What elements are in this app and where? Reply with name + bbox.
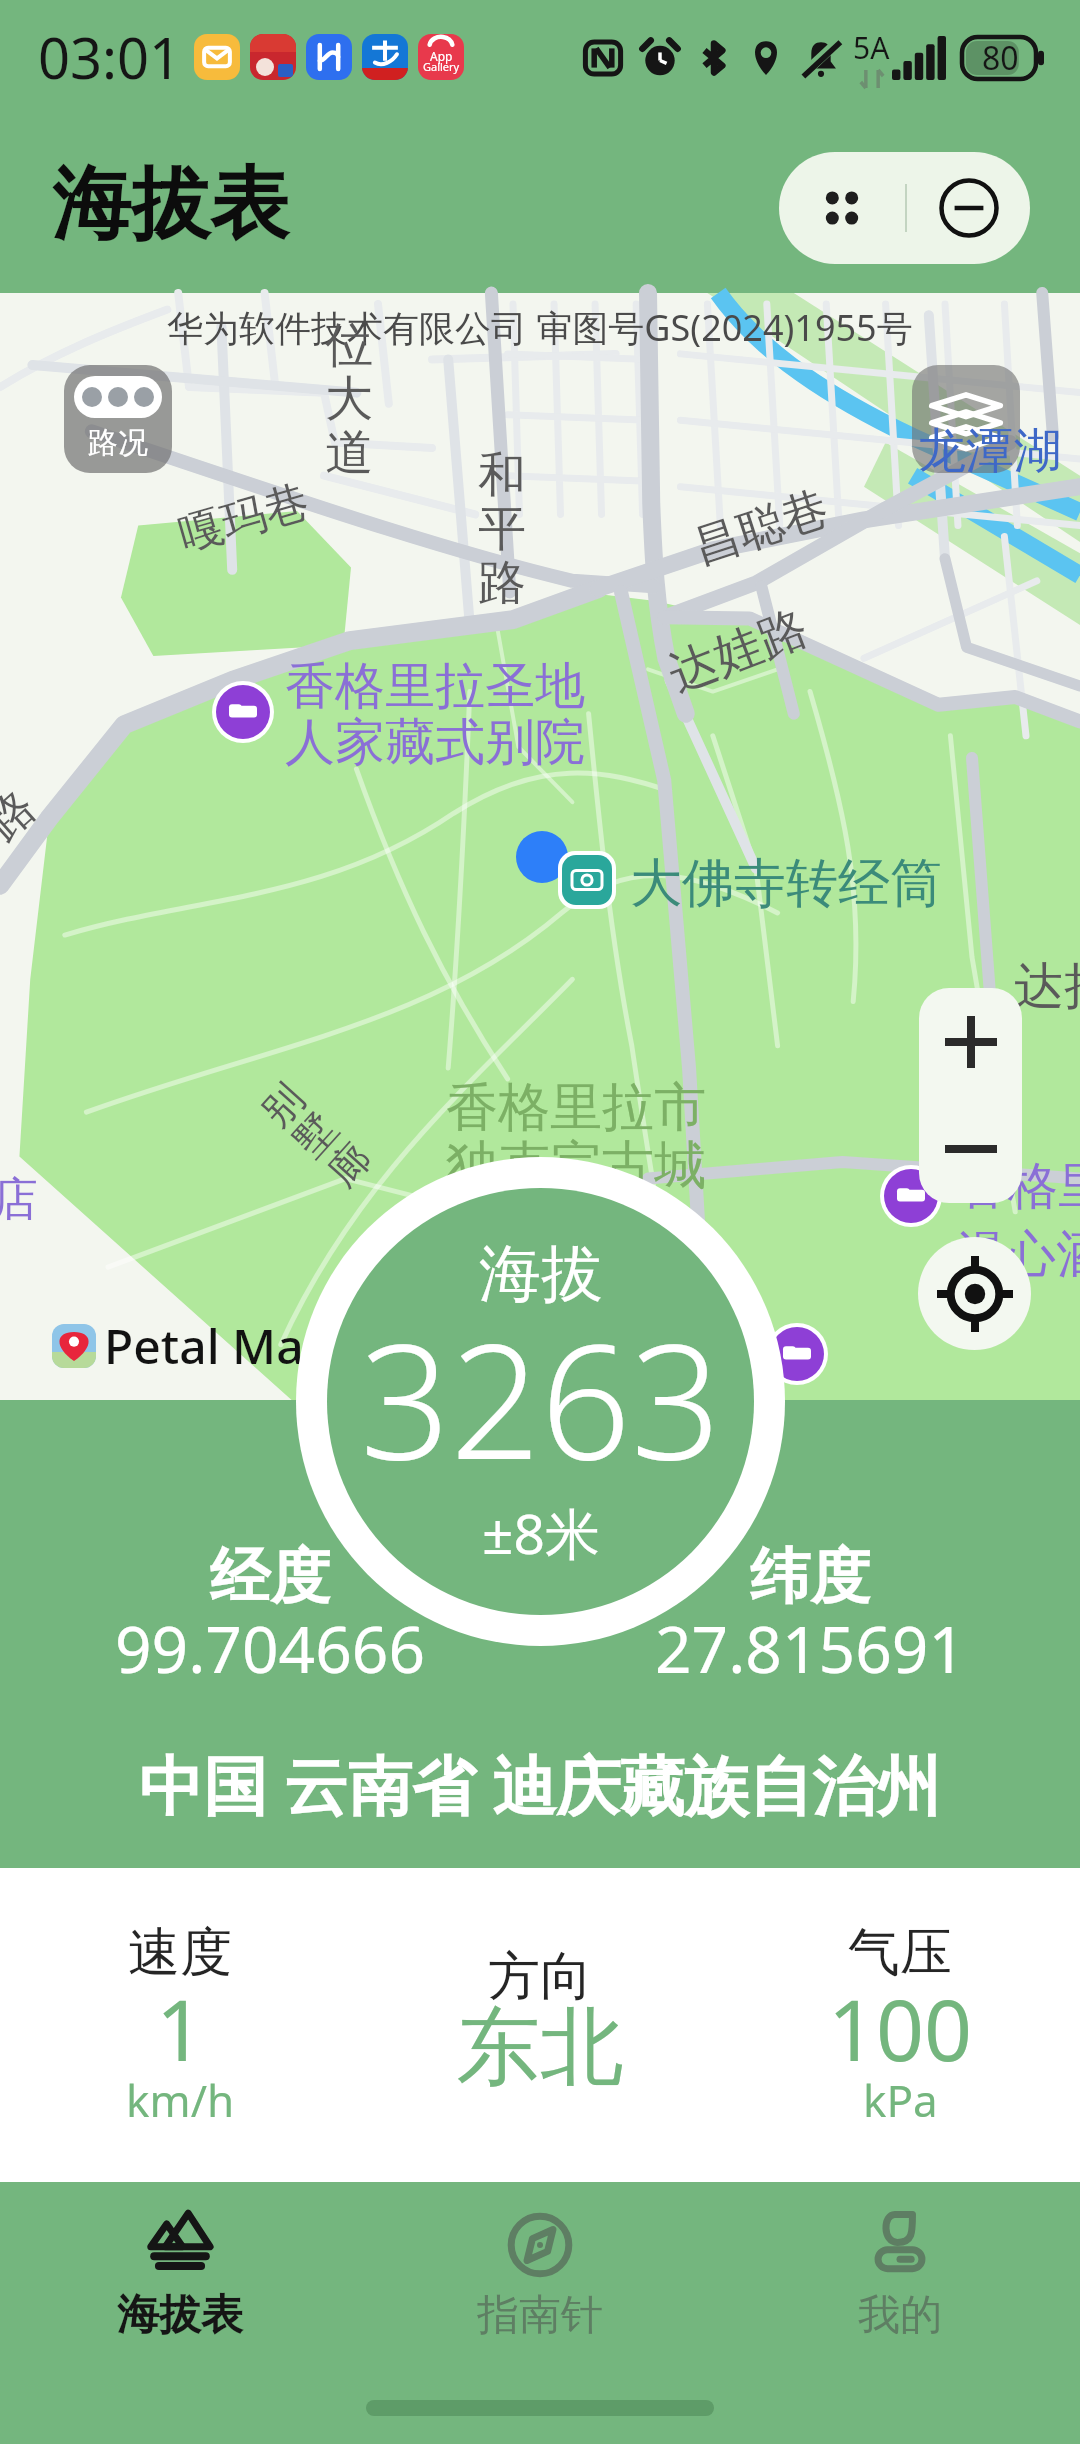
staticText: Gallery (423, 59, 460, 74)
button[interactable]: Zoom in (919, 988, 1022, 1095)
staticText: 昌聪巷 (686, 479, 836, 577)
staticText: 气压 (848, 1920, 952, 1986)
button[interactable]: My location (918, 1237, 1031, 1350)
staticText: Petal Maps (104, 1313, 357, 1378)
staticText: 别 墅 廊 (251, 1073, 381, 1197)
button[interactable]: 海拔表 (0, 2182, 360, 2368)
button[interactable]: 指南针 (360, 2182, 720, 2368)
staticText: ±8米 (482, 1495, 600, 1570)
staticText: 龙潭湖 (918, 421, 1062, 481)
staticText: 达娃路 (660, 597, 816, 705)
button[interactable]: Map layers (912, 365, 1020, 473)
staticText: 路 (0, 778, 47, 852)
staticText: 纬度 (750, 1539, 870, 1615)
staticText: 80 (982, 36, 1019, 80)
staticText: 3263 (360, 1290, 721, 1505)
staticText: 海拔表 (117, 2289, 243, 2342)
staticText: 位 大 道 (325, 315, 373, 483)
staticText: 海拔表 (52, 155, 289, 255)
button[interactable]: 路况 (64, 365, 172, 473)
staticText: 大佛寺转经筒 (630, 851, 942, 917)
button[interactable]: 方向 (360, 1868, 720, 2182)
staticText: 5A (853, 27, 890, 68)
staticText: 路况 (88, 424, 148, 462)
staticText: 指南针 (477, 2289, 603, 2342)
staticText: 我的 (858, 2289, 942, 2342)
staticText: 1 (156, 1971, 205, 2085)
staticText: 100 (828, 1971, 973, 2085)
staticText: 03:01 (38, 19, 182, 95)
button[interactable]: Zoom out (919, 1095, 1022, 1203)
button[interactable]: 气压 (720, 1868, 1080, 2182)
staticText: 方向 (488, 1944, 592, 2010)
button[interactable]: 我的 (720, 2182, 1080, 2368)
button[interactable]: More options (779, 152, 905, 264)
staticText: km/h (126, 2070, 235, 2130)
staticText: kPa (863, 2070, 938, 2130)
staticText: 和 平 路 (478, 445, 526, 613)
staticText: 海拔 (479, 1235, 603, 1313)
staticText: 达拉 (1014, 955, 1080, 1018)
staticText: 漫心酒 (956, 1223, 1080, 1286)
staticText: 嘎玛巷 (173, 474, 315, 563)
staticText: 速度 (128, 1920, 232, 1986)
staticText: 经度 (210, 1539, 330, 1615)
staticText: 香格里拉圣地 人家藏式别院 (285, 655, 585, 774)
staticText: 店 (0, 1171, 38, 1229)
staticText: 27.815691 (655, 1605, 966, 1692)
staticText: App (430, 48, 453, 64)
staticText: 华为软件技术有限公司 审图号GS(2024)1955号 (167, 303, 913, 352)
button[interactable]: 速度 (0, 1868, 360, 2182)
staticText: 香格里 (958, 1155, 1080, 1218)
staticText: 东北 (456, 1995, 624, 2101)
staticText: 香格里拉市 独克宗古城 (446, 1075, 706, 1199)
staticText: 中国 云南省 迪庆藏族自治州 (139, 1741, 941, 1828)
staticText: 99.704666 (115, 1605, 426, 1692)
button[interactable]: Close (907, 152, 1030, 264)
